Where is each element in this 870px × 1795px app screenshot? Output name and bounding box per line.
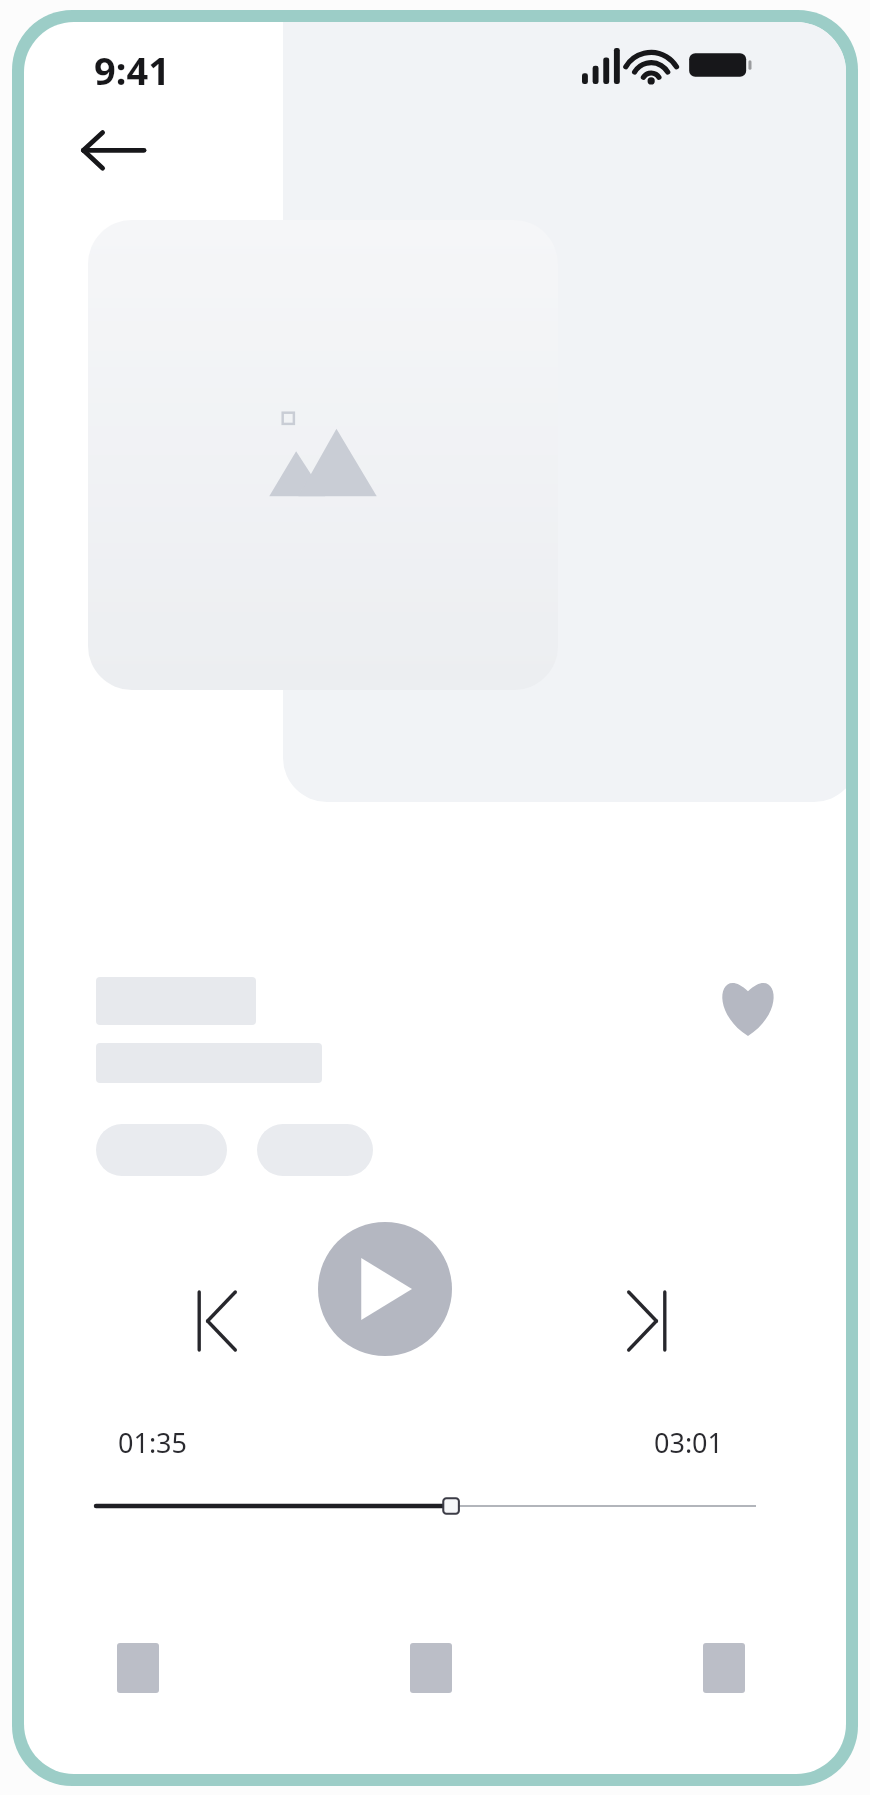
button[interactable] (96, 1480, 756, 1532)
button[interactable]: Favorite (700, 960, 796, 1054)
button[interactable] (88, 220, 558, 690)
button[interactable]: Repeat (395, 1628, 467, 1708)
staticText: 03:01 (654, 1424, 724, 1461)
button[interactable] (96, 1124, 227, 1176)
button[interactable]: Playlist (688, 1628, 760, 1708)
button[interactable] (257, 1124, 373, 1176)
button[interactable]: Play (318, 1222, 452, 1356)
button[interactable]: Shuffle (102, 1628, 174, 1708)
button[interactable]: Back (76, 116, 150, 182)
staticText: 9:41 (94, 44, 170, 96)
button[interactable]: Next (612, 1280, 684, 1362)
button[interactable]: Previous (180, 1280, 252, 1362)
staticText: 01:35 (118, 1424, 188, 1461)
